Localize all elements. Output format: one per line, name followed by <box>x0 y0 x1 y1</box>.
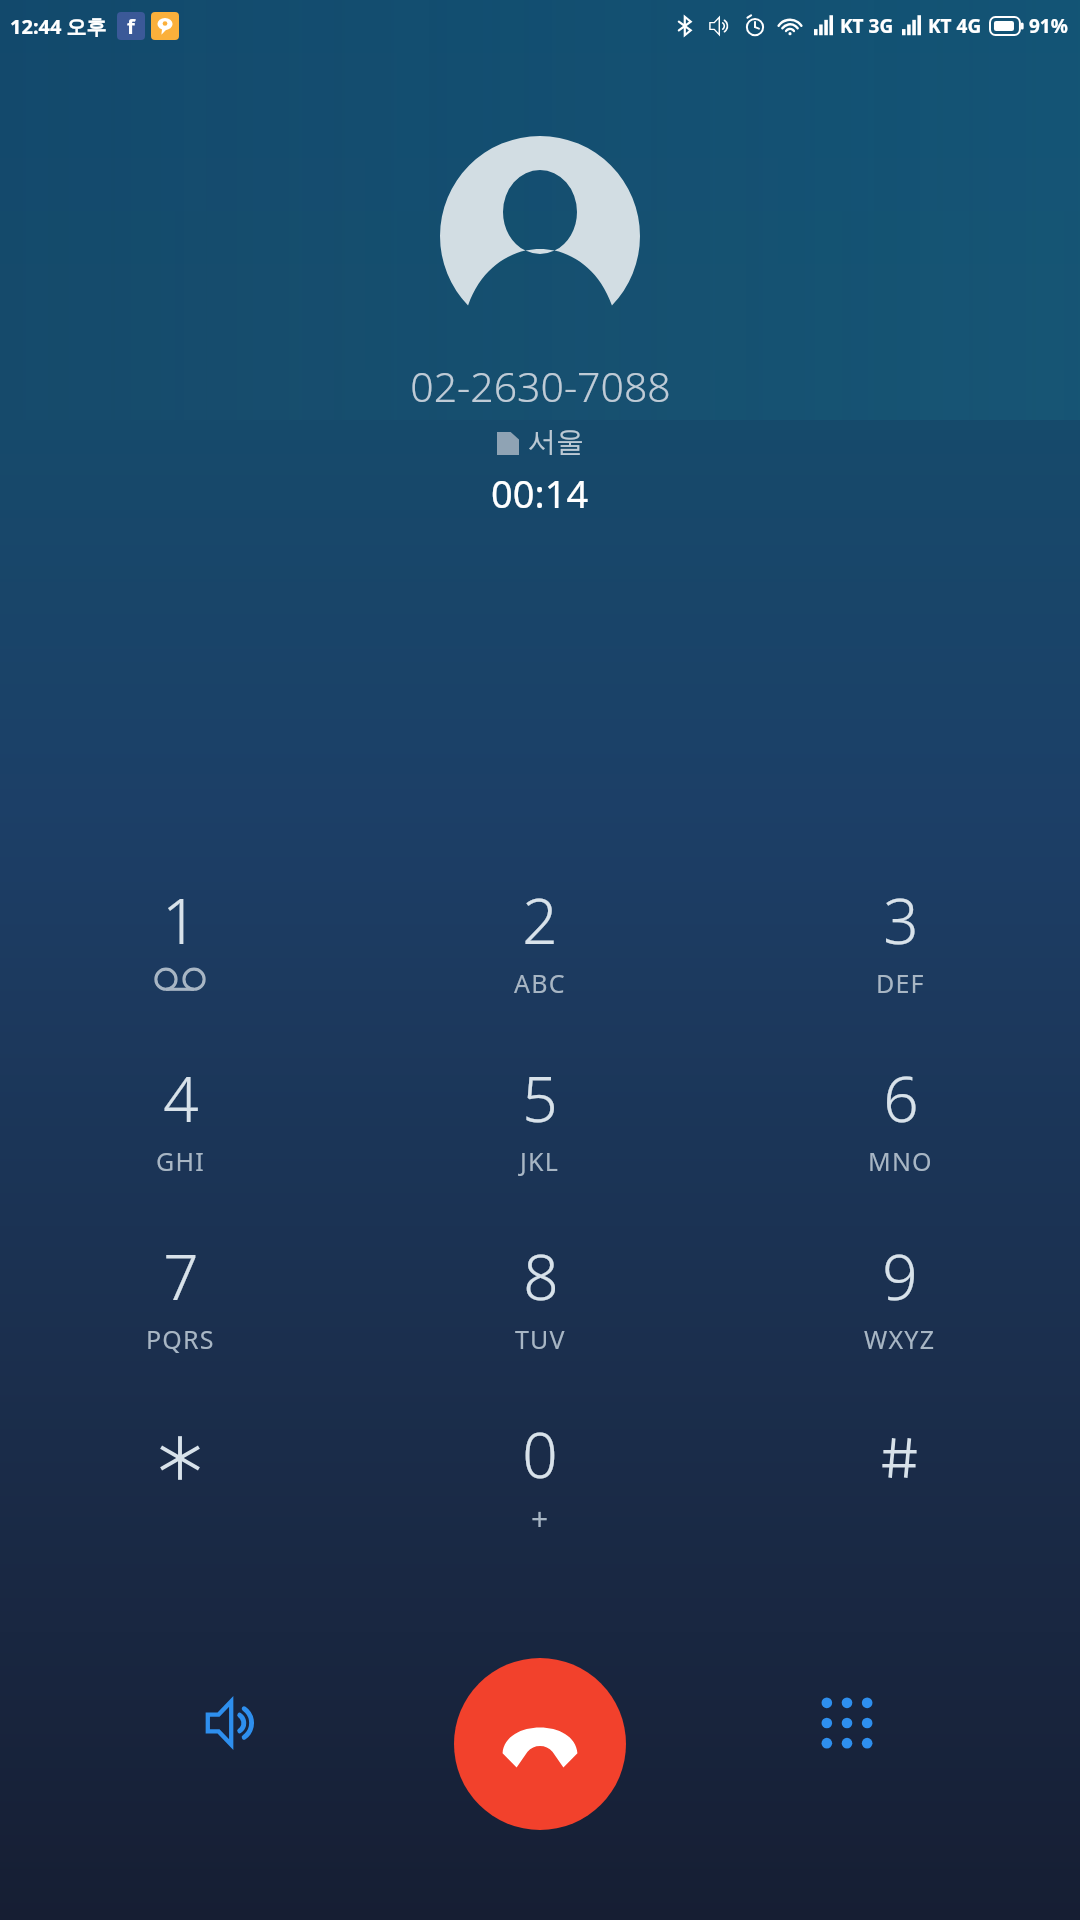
staticText: 12:44 오후 <box>10 13 107 40</box>
staticText: 서울 <box>528 424 584 459</box>
staticText: 4 <box>163 1056 199 1140</box>
button[interactable]: 3 <box>720 878 1080 1056</box>
staticText: MNO <box>868 1144 933 1178</box>
staticText: 9 <box>882 1234 918 1318</box>
button[interactable]: 4 <box>0 1056 360 1234</box>
button[interactable]: End call <box>454 1658 626 1830</box>
button[interactable] <box>0 1412 360 1572</box>
staticText: WXYZ <box>864 1322 936 1356</box>
button[interactable]: 5 <box>360 1056 720 1234</box>
button[interactable] <box>720 1412 1080 1572</box>
staticText: GHI <box>156 1144 205 1178</box>
button[interactable]: 9 <box>720 1234 1080 1412</box>
button[interactable]: Keypad <box>792 1668 902 1778</box>
staticText: + <box>531 1498 550 1539</box>
button[interactable]: 6 <box>720 1056 1080 1234</box>
staticText: JKL <box>520 1144 560 1178</box>
staticText: f <box>127 13 135 40</box>
staticText: 2 <box>522 878 558 962</box>
staticText: TUV <box>515 1322 566 1356</box>
staticText: KT 4G <box>928 13 982 39</box>
staticText: DEF <box>876 966 925 1000</box>
button[interactable]: Speaker <box>178 1668 288 1778</box>
staticText: ABC <box>514 966 566 1000</box>
staticText: 91% <box>1029 13 1068 39</box>
staticText: 02-2630-7088 <box>410 358 671 414</box>
staticText: PQRS <box>146 1322 215 1356</box>
staticText: 3 <box>883 878 919 962</box>
button[interactable]: 8 <box>360 1234 720 1412</box>
staticText: 1 <box>162 878 198 962</box>
staticText: 7 <box>163 1234 199 1318</box>
staticText: 00:14 <box>491 467 589 519</box>
button[interactable]: 7 <box>0 1234 360 1412</box>
staticText: KT 3G <box>840 13 894 39</box>
staticText: 0 <box>522 1412 558 1496</box>
button[interactable]: 1 <box>0 878 360 1056</box>
button[interactable]: 2 <box>360 878 720 1056</box>
staticText: 8 <box>523 1234 559 1318</box>
staticText: 5 <box>522 1056 558 1140</box>
button[interactable]: 0 <box>360 1412 720 1572</box>
staticText: 6 <box>883 1056 919 1140</box>
